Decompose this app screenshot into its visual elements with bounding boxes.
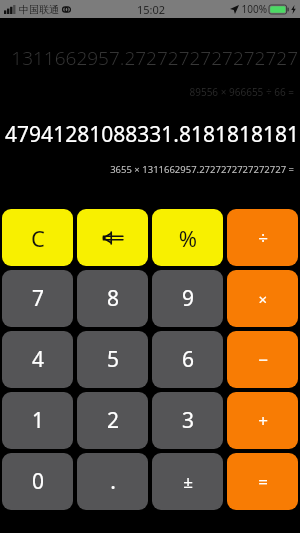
- staticText: =: [258, 470, 268, 493]
- button[interactable]: C: [2, 209, 73, 266]
- button[interactable]: 6: [152, 331, 223, 388]
- staticText: ÷: [258, 226, 268, 249]
- button[interactable]: =: [227, 453, 298, 510]
- staticText: 1311662957.2727272727272727: [11, 45, 298, 71]
- button[interactable]: 2: [77, 392, 148, 449]
- button[interactable]: Backspace: [77, 209, 148, 266]
- staticText: 100%: [241, 2, 267, 16]
- staticText: 1: [31, 406, 44, 435]
- button[interactable]: 3: [152, 392, 223, 449]
- button[interactable]: 0: [2, 453, 73, 510]
- button[interactable]: 7: [2, 270, 73, 327]
- staticText: 7: [31, 284, 44, 313]
- button[interactable]: 5: [77, 331, 148, 388]
- button[interactable]: .: [77, 453, 148, 510]
- button[interactable]: 1: [2, 392, 73, 449]
- button[interactable]: ×: [227, 270, 298, 327]
- button[interactable]: 8: [77, 270, 148, 327]
- button[interactable]: 4: [2, 331, 73, 388]
- staticText: 中国联通: [19, 3, 59, 16]
- staticText: 0: [31, 467, 44, 496]
- staticText: 89556 × 966655 ÷ 66 =: [189, 85, 294, 99]
- button[interactable]: +: [227, 392, 298, 449]
- staticText: ±: [183, 470, 193, 493]
- staticText: 3655 × 1311662957.2727272727272727 =: [110, 163, 294, 176]
- staticText: 8: [106, 284, 119, 313]
- button[interactable]: 9: [152, 270, 223, 327]
- staticText: %: [178, 223, 197, 253]
- staticText: 5: [106, 345, 119, 374]
- staticText: +: [258, 409, 268, 432]
- staticText: 2: [106, 406, 119, 435]
- staticText: ×: [258, 289, 267, 309]
- staticText: 15:02: [136, 2, 165, 17]
- button[interactable]: ±: [152, 453, 223, 510]
- staticText: C: [31, 223, 45, 253]
- button[interactable]: ÷: [227, 209, 298, 266]
- staticText: 9: [181, 284, 194, 313]
- button[interactable]: −: [227, 331, 298, 388]
- staticText: 3: [181, 406, 194, 435]
- staticText: .: [110, 467, 116, 496]
- staticText: 4: [31, 345, 44, 374]
- button[interactable]: %: [152, 209, 223, 266]
- staticText: 47941281088331.818181818181818: [1, 120, 299, 149]
- staticText: −: [258, 348, 268, 371]
- staticText: 6: [181, 345, 194, 374]
